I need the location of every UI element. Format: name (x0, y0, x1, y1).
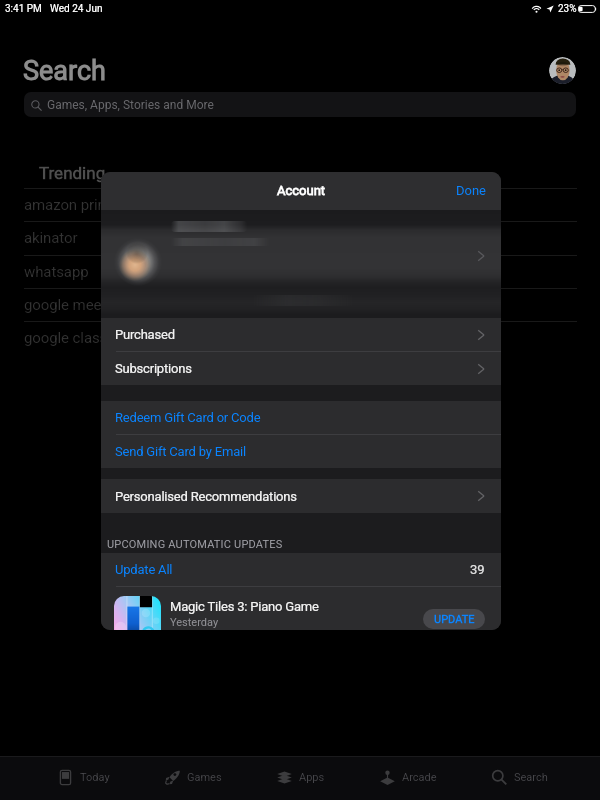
staticText: Apps (299, 771, 325, 784)
staticText: Games (187, 771, 222, 784)
staticText: Subscriptions (115, 361, 192, 376)
staticText: amazon prime video (24, 196, 158, 214)
staticText: Wed 24 Jun (50, 3, 103, 15)
staticText: Search (23, 55, 106, 87)
button[interactable]: google meet (24, 288, 577, 321)
staticText: Magic Tiles 3: Piano Game (170, 599, 319, 614)
button[interactable]: Apps (245, 756, 355, 799)
staticText: whatsapp (24, 263, 89, 281)
staticText: Yesterday (170, 616, 219, 629)
staticText: Account (277, 183, 326, 198)
button[interactable]: Redeem Gift Card or Code (101, 401, 501, 434)
button[interactable]: Games (138, 756, 248, 799)
button[interactable]: Magic Tiles 3: Piano Game (101, 587, 501, 630)
button[interactable]: Update All (101, 553, 501, 586)
button[interactable]: Arcade (353, 756, 463, 799)
staticText: Purchased (115, 327, 175, 342)
staticText: Today (80, 771, 110, 784)
button[interactable]: Apple ID account (101, 210, 501, 315)
button[interactable]: akinator (24, 221, 577, 254)
staticText: Trending (39, 163, 106, 183)
staticText: Games, Apps, Stories and More (47, 98, 214, 112)
button[interactable]: Done (440, 174, 501, 209)
staticText: Personalised Recommendations (115, 489, 297, 504)
button[interactable]: Personalised Recommendations (101, 479, 501, 513)
staticText: Search (514, 771, 548, 784)
button[interactable]: Subscriptions (101, 352, 501, 385)
staticText: 39 (470, 562, 485, 577)
staticText: UPCOMING AUTOMATIC UPDATES (107, 538, 283, 551)
button[interactable]: Search (464, 756, 574, 799)
staticText: 3:41 PM (5, 3, 42, 15)
staticText: akinator (24, 229, 78, 247)
staticText: 23% (558, 3, 577, 15)
staticText: Send Gift Card by Email (115, 444, 246, 459)
button[interactable]: Games, Apps, Stories and More (24, 92, 576, 117)
staticText: UPDATE (434, 613, 475, 626)
staticText: Done (456, 183, 487, 198)
staticText: Redeem Gift Card or Code (115, 410, 261, 425)
staticText: google classroom (24, 329, 143, 347)
button[interactable]: Purchased (101, 318, 501, 351)
button[interactable]: google classroom (24, 321, 577, 354)
button[interactable]: UPDATE (423, 609, 485, 629)
staticText: Arcade (402, 771, 437, 784)
button[interactable]: amazon prime video (24, 188, 577, 221)
staticText: google meet (24, 296, 107, 314)
button[interactable]: Account (549, 57, 576, 84)
staticText: Update All (115, 562, 173, 577)
button[interactable]: Send Gift Card by Email (101, 435, 501, 468)
button[interactable]: whatsapp (24, 255, 577, 288)
button[interactable]: Today (28, 756, 138, 799)
